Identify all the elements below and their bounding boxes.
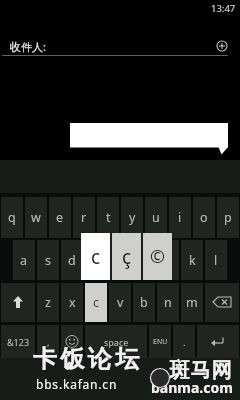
staticText: i xyxy=(178,209,182,226)
staticText: p xyxy=(224,209,232,226)
staticText: , xyxy=(47,336,50,348)
staticText: banma.com xyxy=(151,379,233,398)
button[interactable]: v xyxy=(109,283,131,322)
button[interactable]: m xyxy=(181,283,203,322)
button[interactable]: l xyxy=(205,240,227,280)
staticText: l xyxy=(214,252,218,269)
staticText: w xyxy=(31,209,41,226)
staticText: 斑马网 xyxy=(169,359,232,384)
staticText: . xyxy=(183,336,186,348)
staticText: 卡饭论坛 xyxy=(31,344,141,374)
staticText: bbs.kafan.cn xyxy=(35,375,117,391)
button[interactable]: ENU xyxy=(149,325,171,358)
button[interactable]: x xyxy=(61,283,83,322)
staticText: bbs.kafan.cn xyxy=(35,376,117,392)
staticText: 收件人: xyxy=(10,39,46,54)
staticText: s xyxy=(45,252,51,269)
staticText: o xyxy=(200,209,208,226)
staticText: 卡饭论坛 xyxy=(32,343,142,373)
staticText: 卡饭论坛 xyxy=(30,344,140,374)
button[interactable]: Enter xyxy=(197,325,239,358)
staticText: banma.com xyxy=(152,379,234,398)
staticText: b xyxy=(140,294,148,311)
button[interactable]: r xyxy=(73,197,95,238)
staticText: 卡饭论坛 xyxy=(30,343,140,373)
staticText: c xyxy=(91,244,101,270)
button[interactable]: © xyxy=(143,233,172,280)
staticText: 斑马网 xyxy=(170,357,233,382)
staticText: bbs.kafan.cn xyxy=(37,377,119,393)
button[interactable]: . xyxy=(173,325,195,358)
staticText: banma.com xyxy=(150,378,232,397)
button[interactable]: p xyxy=(217,197,239,238)
staticText: bbs.kafan.cn xyxy=(36,375,118,391)
staticText: banma.com xyxy=(152,377,234,396)
button[interactable]: Backspace xyxy=(205,283,239,322)
staticText: v xyxy=(117,294,124,311)
button[interactable]: Add recipient xyxy=(216,40,228,52)
button[interactable]: w xyxy=(25,197,47,238)
staticText: 斑马网 xyxy=(168,359,231,384)
staticText: ç xyxy=(122,244,132,270)
button[interactable]: e xyxy=(49,197,71,238)
button[interactable]: space xyxy=(85,325,147,358)
button[interactable]: s xyxy=(37,240,59,280)
button[interactable]: a xyxy=(13,240,35,280)
staticText: c xyxy=(93,294,100,311)
staticText: 斑马网 xyxy=(170,358,233,383)
staticText: 卡饭论坛 xyxy=(32,344,142,374)
button[interactable]: z xyxy=(37,283,59,322)
button[interactable]: h xyxy=(133,240,155,280)
button[interactable]: u xyxy=(145,197,167,238)
staticText: 斑马网 xyxy=(168,358,231,383)
button[interactable]: b xyxy=(133,283,155,322)
button[interactable]: t xyxy=(97,197,119,238)
staticText: k xyxy=(189,252,196,269)
staticText: 卡饭论坛 xyxy=(31,345,141,375)
staticText: banma.com xyxy=(151,378,233,397)
staticText: bbs.kafan.cn xyxy=(35,377,117,393)
button[interactable]: , xyxy=(37,325,59,358)
staticText: banma.com xyxy=(152,378,234,397)
staticText: r xyxy=(81,209,87,226)
staticText: x xyxy=(69,294,76,311)
staticText: 斑马网 xyxy=(168,357,231,382)
staticText: bbs.kafan.cn xyxy=(36,376,118,392)
button[interactable]: g xyxy=(109,240,131,280)
staticText: q xyxy=(8,209,16,226)
button[interactable]: c xyxy=(81,233,110,280)
button[interactable]: j xyxy=(157,240,179,280)
staticText: a xyxy=(20,252,28,269)
staticText: bbs.kafan.cn xyxy=(37,376,119,392)
button[interactable]: Shift xyxy=(1,283,35,322)
button[interactable]: Emoji xyxy=(61,325,83,358)
staticText: 13:47 xyxy=(211,2,236,15)
button[interactable]: f xyxy=(85,240,107,280)
staticText: banma.com xyxy=(150,377,232,396)
button[interactable]: y xyxy=(121,197,143,238)
staticText: &123 xyxy=(7,336,30,348)
staticText: 斑马网 xyxy=(170,359,233,384)
staticText: bbs.kafan.cn xyxy=(37,375,119,391)
button[interactable]: i xyxy=(169,197,191,238)
button[interactable]: &123 xyxy=(1,325,35,358)
staticText: u xyxy=(152,209,160,226)
staticText: g xyxy=(116,252,124,269)
button[interactable]: d xyxy=(61,240,83,280)
staticText: © xyxy=(150,244,165,269)
staticText: bbs.kafan.cn xyxy=(36,377,118,393)
button[interactable]: c xyxy=(85,283,107,322)
button[interactable]: n xyxy=(157,283,179,322)
staticText: 卡饭论坛 xyxy=(32,345,142,375)
staticText: z xyxy=(45,294,51,311)
staticText: banma.com xyxy=(150,379,232,398)
staticText: e xyxy=(56,209,64,226)
button[interactable]: o xyxy=(193,197,215,238)
staticText: n xyxy=(164,294,172,311)
button[interactable]: k xyxy=(181,240,203,280)
staticText: d xyxy=(68,252,76,269)
button[interactable]: q xyxy=(1,197,23,238)
staticText: y xyxy=(129,209,136,226)
button[interactable]: ç xyxy=(112,233,141,280)
